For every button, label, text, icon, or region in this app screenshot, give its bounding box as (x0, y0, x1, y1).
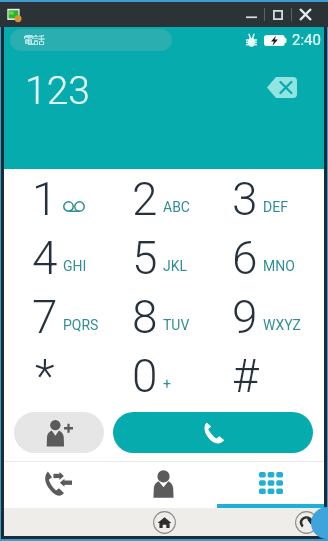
staticText: ABC (163, 199, 190, 215)
staticText: + (163, 376, 171, 392)
button[interactable]: Maximize (265, 2, 291, 27)
button[interactable]: 7 (14, 287, 114, 346)
staticText: WXYZ (263, 317, 301, 333)
button[interactable]: 電話 (10, 29, 172, 51)
staticText: * (35, 349, 55, 403)
staticText: DEF (263, 199, 288, 215)
staticText: 123 (25, 68, 90, 114)
staticText: 7 (32, 290, 58, 344)
button[interactable]: 3 (214, 169, 314, 228)
button[interactable]: 5 (114, 228, 214, 287)
button[interactable]: Minimize (238, 2, 264, 27)
staticText: 2 (132, 172, 158, 226)
staticText: # (232, 349, 259, 403)
staticText: PQRS (63, 317, 99, 333)
button[interactable]: Home (150, 508, 178, 536)
button[interactable]: * (14, 346, 114, 405)
button[interactable]: Backspace (262, 69, 302, 105)
staticText: 9 (232, 290, 258, 344)
button[interactable]: 1 (14, 169, 114, 228)
staticText: 0 (132, 349, 158, 403)
button[interactable]: 0 (114, 346, 214, 405)
button[interactable]: # (214, 346, 314, 405)
staticText: 8 (132, 290, 158, 344)
staticText: 6 (232, 231, 258, 285)
staticText: JKL (163, 258, 188, 274)
staticText: 4 (32, 231, 58, 285)
staticText: GHI (63, 258, 87, 274)
staticText: 3 (232, 172, 258, 226)
button[interactable]: Keypad (217, 462, 324, 508)
staticText: MNO (263, 258, 295, 274)
staticText: 1 (32, 172, 58, 226)
button[interactable]: 6 (214, 228, 314, 287)
staticText: 2:40 (292, 31, 321, 49)
button[interactable]: 2 (114, 169, 214, 228)
button[interactable]: Recent calls (4, 462, 110, 508)
button[interactable]: Rotate screen (292, 508, 320, 536)
staticText: 電話 (23, 33, 45, 47)
button[interactable]: 9 (214, 287, 314, 346)
staticText: TUV (163, 317, 190, 333)
staticText: 5 (132, 231, 158, 285)
button[interactable]: 4 (14, 228, 114, 287)
button[interactable]: 8 (114, 287, 214, 346)
button[interactable]: Close (292, 2, 319, 27)
button[interactable]: Contacts (110, 462, 217, 508)
button[interactable]: Call (113, 412, 313, 453)
button[interactable]: Add contact (14, 412, 104, 453)
